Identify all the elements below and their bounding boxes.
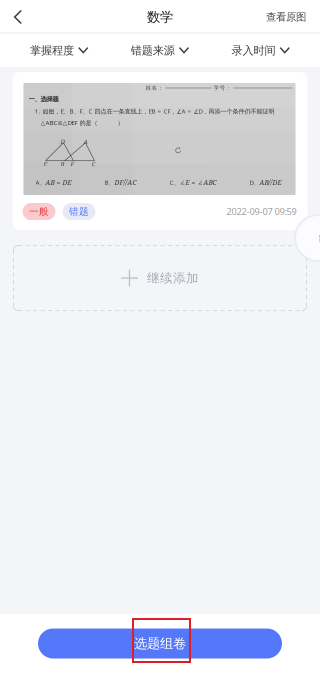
- staticText: DF//AC: [114, 178, 136, 187]
- staticText: A、: [35, 178, 45, 187]
- staticText: 学号：: [213, 84, 231, 92]
- staticText: A: [83, 137, 87, 146]
- staticText: D: [60, 137, 64, 146]
- staticText: ∠E = ∠ABC: [179, 178, 216, 187]
- staticText: B、: [104, 178, 114, 187]
- staticText: 统计: [319, 232, 320, 244]
- staticText: 错题: [69, 205, 89, 218]
- button[interactable]: 错题来源: [123, 34, 197, 67]
- staticText: F: [70, 160, 74, 168]
- staticText: 一、选择题: [28, 95, 58, 103]
- staticText: 掌握程度: [30, 43, 74, 57]
- button[interactable]: Statistics: [294, 214, 320, 262]
- button[interactable]: 录入时间: [223, 34, 298, 67]
- staticText: 继续添加: [147, 270, 199, 286]
- staticText: 一般: [29, 205, 49, 218]
- staticText: D、: [249, 178, 259, 187]
- staticText: C、: [169, 178, 179, 187]
- staticText: 数学: [147, 9, 173, 25]
- staticText: 选题组卷: [134, 635, 186, 652]
- button[interactable]: 继续添加: [13, 245, 307, 311]
- button[interactable]: 查看原图: [256, 0, 320, 34]
- staticText: 错题来源: [131, 43, 175, 57]
- staticText: 查看原图: [266, 10, 306, 23]
- staticText: 姓名：: [145, 84, 163, 92]
- staticText: 2022-09-07 09:59: [226, 205, 296, 218]
- staticText: 1. 如图，E、B、F、C 四点在一条直线上，EB = CF，∠A = ∠D，再…: [34, 107, 274, 115]
- button[interactable]: Back: [0, 0, 36, 34]
- staticText: E: [43, 160, 47, 168]
- staticText: B: [60, 160, 64, 168]
- staticText: AB//DE: [259, 178, 281, 187]
- staticText: 录入时间: [231, 43, 275, 57]
- staticText: △ABC≌△DEF 的是（ ）: [40, 118, 123, 127]
- button[interactable]: 掌握程度: [22, 34, 96, 67]
- button[interactable]: 选题组卷: [38, 628, 282, 658]
- staticText: C: [91, 160, 95, 168]
- staticText: AB = DE: [45, 178, 71, 187]
